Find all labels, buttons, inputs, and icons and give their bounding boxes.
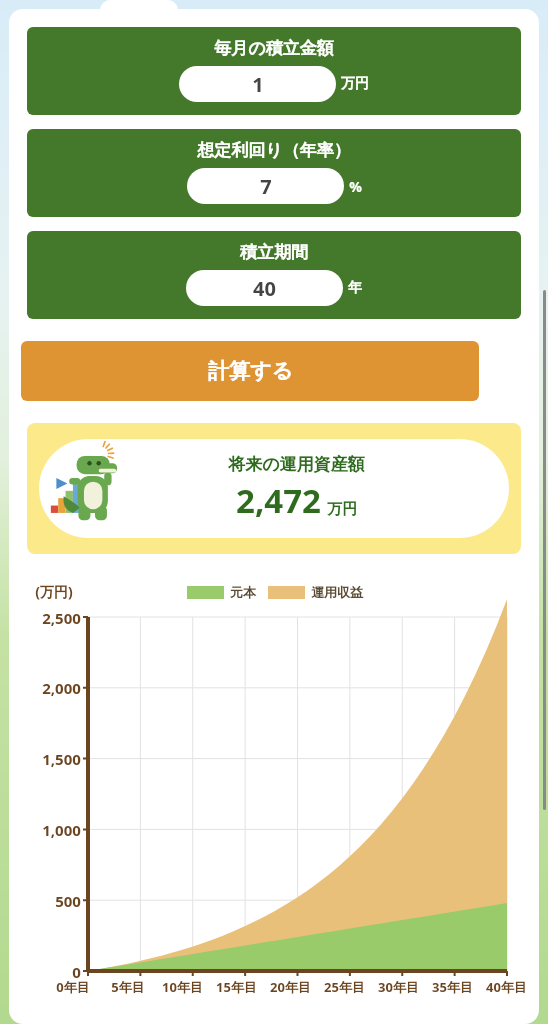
staticText: 40: [253, 275, 276, 302]
staticText: 30年目: [378, 978, 419, 996]
staticText: (万円): [35, 582, 73, 601]
button[interactable]: 40: [186, 270, 343, 306]
staticText: 計算する: [208, 358, 293, 384]
staticText: 5年目: [111, 978, 145, 996]
button[interactable]: 想定利回り（年率）: [27, 129, 521, 217]
staticText: 1: [252, 71, 264, 98]
button[interactable]: 毎月の積立金額: [27, 27, 521, 115]
staticText: 万円: [341, 75, 369, 93]
staticText: 1,500: [42, 749, 81, 769]
button[interactable]: Mascot: [27, 423, 521, 554]
staticText: 元本: [230, 584, 256, 600]
staticText: 2,472: [236, 478, 321, 523]
staticText: 7: [260, 173, 272, 200]
staticText: 将来の運用資産額: [228, 454, 365, 475]
other: Mascot: [49, 443, 141, 535]
button[interactable]: 7: [187, 168, 344, 204]
staticText: 10年目: [162, 978, 203, 996]
staticText: 2,500: [42, 608, 81, 628]
button[interactable]: 計算する: [21, 341, 479, 401]
staticText: 0: [72, 962, 81, 982]
staticText: 毎月の積立金額: [214, 38, 334, 59]
staticText: 想定利回り（年率）: [197, 140, 351, 161]
staticText: 0年目: [56, 978, 90, 996]
staticText: 15年目: [216, 978, 257, 996]
staticText: 2,000: [42, 678, 81, 698]
button[interactable]: 積立期間: [27, 231, 521, 319]
staticText: 25年目: [324, 978, 365, 996]
staticText: 35年目: [432, 978, 473, 996]
staticText: 40年目: [486, 978, 527, 996]
staticText: 運用収益: [311, 584, 363, 600]
button[interactable]: 1: [179, 66, 336, 102]
staticText: 20年目: [270, 978, 311, 996]
staticText: 年: [348, 279, 362, 297]
staticText: %: [349, 177, 362, 196]
staticText: 万円: [327, 500, 357, 519]
staticText: 積立期間: [240, 242, 308, 263]
staticText: 1,000: [42, 820, 81, 840]
staticText: 500: [55, 891, 81, 911]
